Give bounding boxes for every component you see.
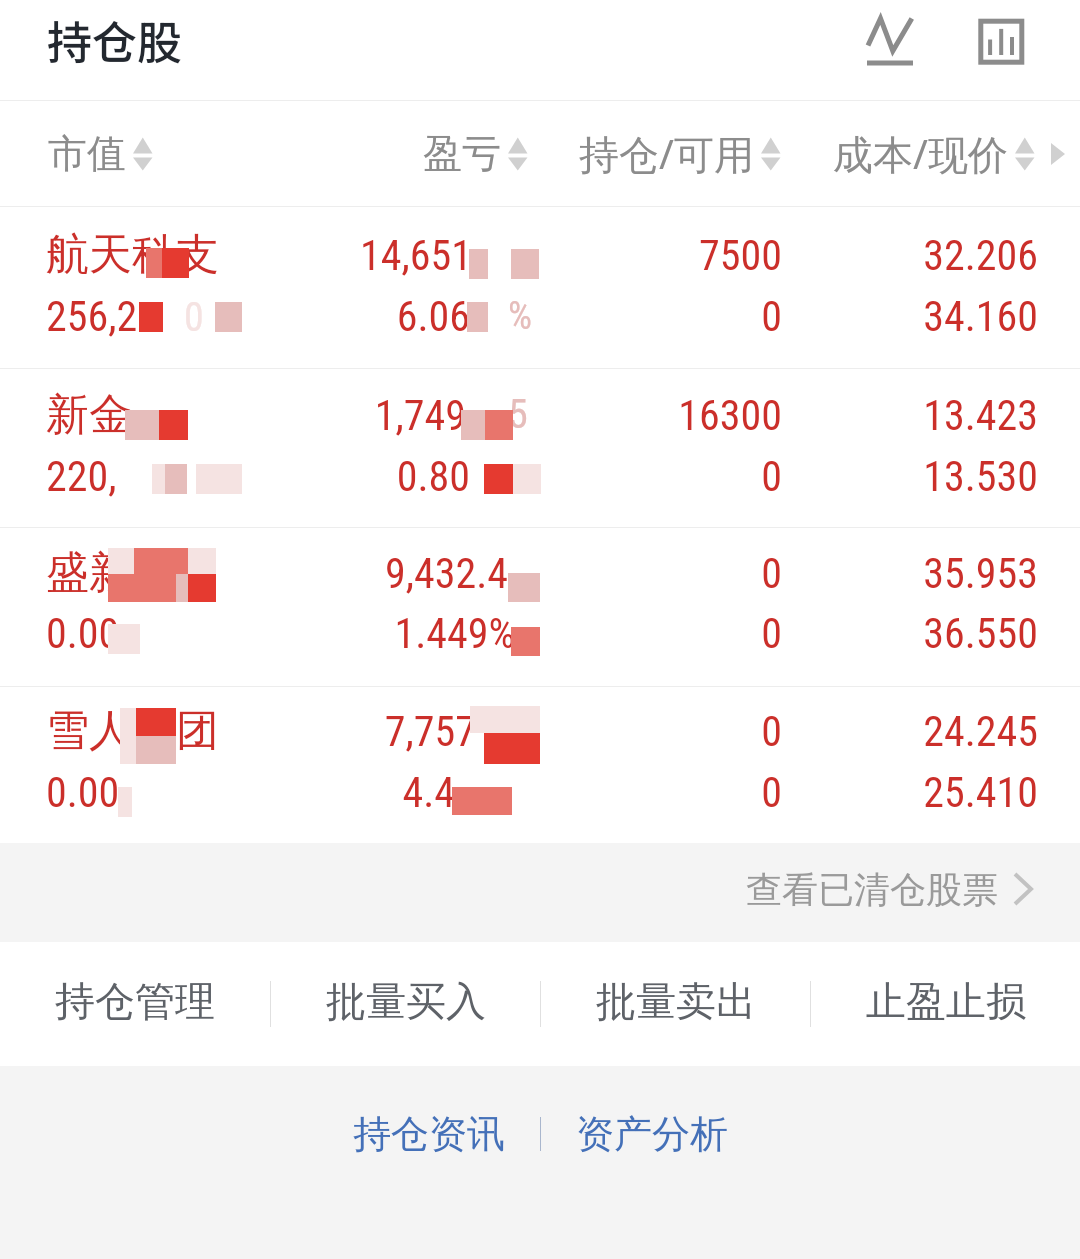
staticText: 9,432.4: [0, 549, 508, 598]
staticText: 新金: [46, 388, 132, 442]
staticText: 雪人: [46, 704, 132, 758]
staticText: 持仓管理: [55, 976, 215, 1026]
staticText: 5: [508, 391, 528, 438]
staticText: 7500: [0, 231, 782, 280]
staticText: 256,2: [46, 292, 138, 341]
staticText: 34.160: [0, 292, 1038, 341]
staticText: 批量卖出: [596, 976, 756, 1026]
button[interactable]: 资产分析: [559, 1097, 744, 1171]
staticText: 0: [0, 549, 782, 598]
button[interactable]: 批量买入: [271, 942, 540, 1066]
button[interactable]: 持仓管理: [0, 942, 270, 1066]
staticText: 35.953: [0, 549, 1038, 598]
staticText: 0: [0, 292, 782, 341]
button[interactable]: 持仓/可用: [579, 101, 783, 206]
staticText: 0.00: [46, 609, 120, 658]
staticText: 0: [0, 768, 782, 817]
staticText: 成本/现价: [833, 126, 1008, 181]
button[interactable]: 航天科: [0, 206, 1080, 368]
staticText: 查看已清仓股票: [746, 867, 998, 912]
staticText: 0: [184, 294, 204, 341]
button[interactable]: 查看已清仓股票: [746, 854, 1035, 924]
staticText: 支: [176, 228, 219, 282]
staticText: 1,749: [0, 391, 466, 440]
button[interactable]: 成本/现价: [833, 101, 1037, 206]
staticText: 持仓/可用: [579, 126, 754, 181]
staticText: 4.4: [0, 768, 455, 817]
button[interactable]: 批量卖出: [541, 942, 810, 1066]
staticText: 持仓资讯: [353, 1110, 505, 1158]
staticText: 0.00: [46, 768, 120, 817]
staticText: 32.206: [0, 231, 1038, 280]
staticText: 36.550: [0, 609, 1038, 658]
staticText: 220,: [46, 452, 117, 501]
staticText: 盛新: [46, 546, 132, 600]
button[interactable]: 止盈止损: [811, 942, 1080, 1066]
staticText: 13.423: [0, 391, 1038, 440]
staticText: 盈亏: [423, 129, 501, 178]
button[interactable]: 盈亏: [423, 101, 530, 206]
staticText: 0.80: [0, 452, 470, 501]
staticText: 0: [0, 609, 782, 658]
staticText: 持仓股: [47, 7, 183, 72]
staticText: 止盈止损: [866, 976, 1026, 1026]
staticText: 0: [0, 452, 782, 501]
button[interactable]: More columns: [1042, 133, 1072, 173]
button[interactable]: 持仓资讯: [336, 1097, 521, 1171]
staticText: 批量买入: [326, 976, 486, 1026]
button[interactable]: 新金: [0, 369, 1080, 527]
staticText: 资产分析: [576, 1110, 728, 1158]
staticText: 航天科: [46, 228, 175, 282]
staticText: 6.06: [0, 292, 470, 341]
staticText: 14,651: [0, 231, 472, 280]
staticText: 16300: [0, 391, 782, 440]
button[interactable]: 雪人: [0, 687, 1080, 843]
staticText: %: [508, 294, 533, 339]
button[interactable]: 市值: [48, 101, 155, 206]
button[interactable]: Trend chart: [840, 0, 940, 100]
staticText: 24.245: [0, 707, 1038, 756]
staticText: 7,757: [0, 707, 476, 756]
staticText: 0: [0, 707, 782, 756]
staticText: 团: [176, 704, 219, 758]
button[interactable]: 盛新: [0, 528, 1080, 686]
button[interactable]: Bar chart: [950, 0, 1050, 100]
staticText: 25.410: [0, 768, 1038, 817]
staticText: 1.449%: [0, 609, 515, 658]
staticText: 市值: [48, 129, 126, 178]
staticText: 13.530: [0, 452, 1038, 501]
